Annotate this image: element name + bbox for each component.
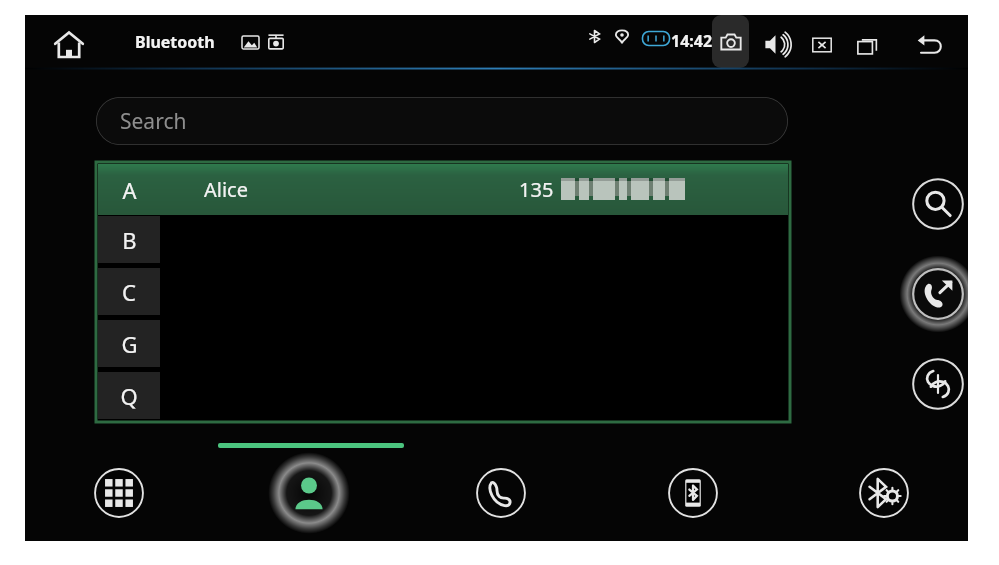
button[interactable]: Close xyxy=(809,32,835,58)
button[interactable]: B xyxy=(98,216,160,263)
button[interactable]: Search xyxy=(96,97,788,145)
button[interactable]: C xyxy=(98,268,160,315)
staticText: Bluetooth xyxy=(135,31,215,53)
button[interactable]: G xyxy=(98,320,160,367)
button[interactable]: Bluetooth phone xyxy=(655,455,731,531)
staticText: 135 xyxy=(519,176,554,203)
button[interactable]: Call log xyxy=(463,455,539,531)
button[interactable]: Dashcam xyxy=(265,31,287,53)
button[interactable]: Contacts xyxy=(271,455,347,531)
staticText: Alice xyxy=(204,176,248,203)
button[interactable]: Gallery xyxy=(240,32,260,52)
button[interactable]: Alice xyxy=(98,164,788,215)
button[interactable]: Outgoing call xyxy=(902,258,974,330)
button[interactable]: Sync contacts xyxy=(902,348,974,420)
button[interactable]: Recent apps xyxy=(854,32,882,60)
button[interactable]: Bluetooth settings xyxy=(846,455,922,531)
staticText: A xyxy=(122,175,137,205)
button[interactable]: A xyxy=(98,164,160,215)
staticText: G xyxy=(121,329,138,359)
button[interactable]: Home xyxy=(47,23,91,67)
button[interactable]: Back xyxy=(913,29,947,63)
button[interactable]: Q xyxy=(98,372,160,419)
staticText: Search xyxy=(120,107,187,136)
staticText: B xyxy=(122,225,137,255)
button[interactable]: Keypad xyxy=(81,455,157,531)
button[interactable]: Screenshot xyxy=(712,15,749,68)
staticText: 14:42 xyxy=(671,30,713,52)
button[interactable]: Search contacts xyxy=(902,168,974,240)
button[interactable]: Volume xyxy=(760,29,790,59)
staticText: Q xyxy=(120,381,138,411)
staticText: C xyxy=(122,277,136,307)
